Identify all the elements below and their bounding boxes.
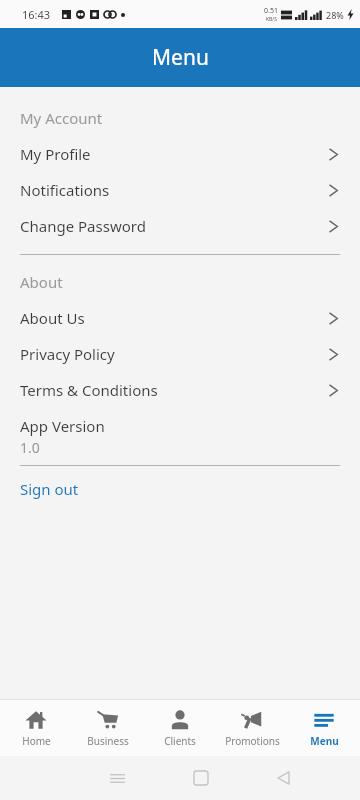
staticText: 1.0	[20, 438, 40, 457]
staticText: Home	[22, 734, 51, 748]
staticText: Sign out	[20, 479, 79, 499]
staticText: 16:43	[22, 7, 51, 22]
staticText: Menu	[310, 734, 339, 748]
button[interactable]: Menu	[288, 700, 360, 756]
button[interactable]: About Us	[0, 300, 360, 336]
staticText: App Version	[20, 416, 105, 436]
staticText: Business	[87, 734, 129, 748]
staticText: Notifications	[20, 180, 329, 200]
staticText: Terms & Conditions	[20, 380, 329, 400]
button[interactable]: My Profile	[0, 136, 360, 172]
staticText: Privacy Policy	[20, 344, 329, 364]
button[interactable]: Sign out	[0, 472, 360, 506]
staticText: Menu	[152, 43, 209, 72]
staticText: Promotions	[225, 734, 280, 748]
button[interactable]: Privacy Policy	[0, 336, 360, 372]
button[interactable]: Promotions	[216, 700, 288, 756]
staticText: KB/S	[266, 16, 277, 23]
button[interactable]: Clients	[144, 700, 216, 756]
staticText: About	[20, 272, 63, 292]
staticText: 28%	[326, 9, 344, 21]
button[interactable]: Notifications	[0, 172, 360, 208]
staticText: 0.51	[264, 6, 278, 16]
staticText: Change Password	[20, 216, 329, 236]
staticText: My Profile	[20, 144, 329, 164]
staticText: My Account	[20, 108, 103, 128]
button[interactable]: Terms & Conditions	[0, 372, 360, 408]
staticText: About Us	[20, 308, 329, 328]
staticText: Clients	[164, 734, 196, 748]
button[interactable]: Home	[0, 700, 72, 756]
button[interactable]: Change Password	[0, 208, 360, 244]
button[interactable]: Business	[72, 700, 144, 756]
